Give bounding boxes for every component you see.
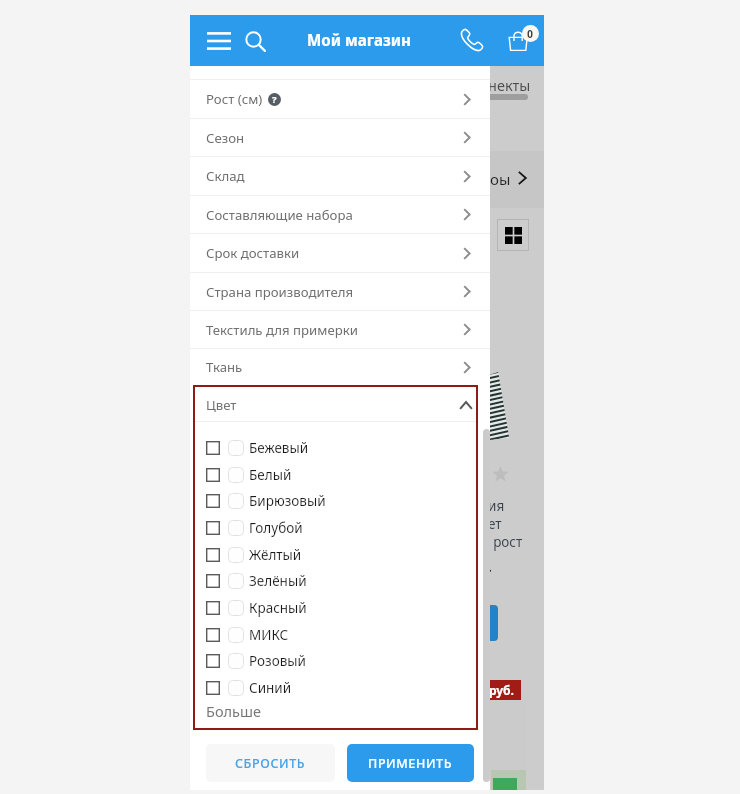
staticText: , рост <box>486 533 523 551</box>
button[interactable]: Синий <box>193 678 478 698</box>
button[interactable]: Сезон <box>190 119 490 156</box>
staticText: Текстиль для примерки <box>206 321 358 339</box>
button[interactable]: Бежевый <box>193 438 478 458</box>
button[interactable]: Call <box>451 19 493 61</box>
staticText: Красный <box>249 599 307 617</box>
staticText: Склад <box>206 167 245 185</box>
staticText: Зелёный <box>249 572 307 590</box>
staticText: ет <box>488 515 502 533</box>
button[interactable]: Зелёный <box>193 571 478 591</box>
button[interactable]: ПРИМЕНИТЬ <box>347 744 474 782</box>
staticText: Розовый <box>249 652 306 670</box>
button[interactable]: Цвет <box>193 387 478 423</box>
button[interactable]: Больше <box>193 699 478 723</box>
button[interactable]: Голубой <box>193 518 478 538</box>
button[interactable]: Рост (см) <box>190 80 490 118</box>
button[interactable]: Жёлтый <box>193 545 478 565</box>
button[interactable]: Розовый <box>193 651 478 671</box>
staticText: Страна производителя <box>206 283 354 301</box>
staticText: . <box>488 558 492 576</box>
button[interactable]: Страна производителя <box>190 273 490 310</box>
button[interactable]: Красный <box>193 598 478 618</box>
button[interactable]: МИКС <box>193 625 478 645</box>
staticText: Цвет <box>206 396 237 414</box>
button[interactable]: Срок доставки <box>190 234 490 272</box>
staticText: ? <box>272 93 277 106</box>
staticText: ПРИМЕНИТЬ <box>368 755 453 772</box>
staticText: ия <box>488 497 505 515</box>
button[interactable]: Grid view <box>497 219 529 251</box>
staticText: Рост (см) <box>206 90 263 108</box>
button[interactable]: Ткань <box>190 349 490 385</box>
staticText: Составляющие набора <box>206 206 353 224</box>
staticText: некты <box>488 75 531 95</box>
staticText: Ткань <box>206 358 243 376</box>
staticText: Больше <box>206 701 261 721</box>
staticText: Мой магазин <box>307 30 411 51</box>
button[interactable]: Cart <box>500 23 536 59</box>
button[interactable]: Menu <box>198 20 240 62</box>
staticText: Голубой <box>249 519 303 537</box>
button[interactable]: СБРОСИТЬ <box>206 744 335 782</box>
button[interactable]: Белый <box>193 465 478 485</box>
staticText: Бежевый <box>249 439 309 457</box>
button[interactable]: Текстиль для примерки <box>190 311 490 348</box>
staticText: СБРОСИТЬ <box>235 755 306 772</box>
staticText: Жёлтый <box>249 546 302 564</box>
button[interactable]: Search <box>234 20 276 62</box>
staticText: оы <box>490 169 511 189</box>
button[interactable]: Бирюзовый <box>193 491 478 511</box>
staticText: руб. <box>489 682 514 698</box>
staticText: Срок доставки <box>206 244 300 262</box>
staticText: МИКС <box>249 626 289 644</box>
staticText: Белый <box>249 466 292 484</box>
button[interactable]: Составляющие набора <box>190 196 490 233</box>
staticText: Синий <box>249 679 292 697</box>
staticText: 0 <box>527 27 534 41</box>
button[interactable]: Склад <box>190 157 490 195</box>
staticText: Сезон <box>206 129 245 147</box>
staticText: Бирюзовый <box>249 492 326 510</box>
